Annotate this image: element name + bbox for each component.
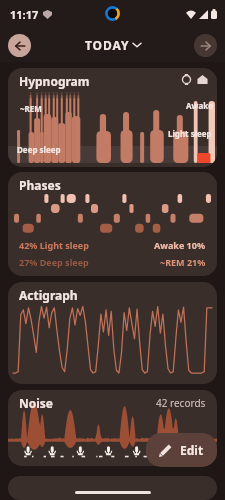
staticText: 11:17 xyxy=(10,7,39,22)
button[interactable]: Edit xyxy=(146,433,217,467)
staticText: ~REM xyxy=(20,103,42,114)
staticText: Deep sleep xyxy=(17,144,61,155)
button[interactable]: Watch xyxy=(182,74,191,85)
staticText: Noise xyxy=(19,395,54,411)
staticText: Edit xyxy=(180,442,204,458)
staticText: Light sleep xyxy=(168,128,212,139)
button[interactable]: Noise xyxy=(8,390,217,466)
staticText: ~REM 21% xyxy=(160,256,206,268)
staticText: Phases xyxy=(19,177,61,193)
staticText: TODAY xyxy=(85,37,130,53)
staticText: Actigraph xyxy=(19,287,78,303)
button[interactable]: Actigraph xyxy=(8,282,217,384)
button[interactable]: Phases xyxy=(8,172,217,276)
button[interactable]: Next day xyxy=(194,34,217,57)
button[interactable]: Home xyxy=(197,74,208,85)
button[interactable] xyxy=(8,476,217,500)
staticText: Awake 10% xyxy=(154,239,206,251)
button[interactable]: Previous day xyxy=(8,34,31,57)
staticText: 42% Light sleep xyxy=(19,239,89,251)
button[interactable]: Hypnogram xyxy=(8,68,217,167)
staticText: 42 records xyxy=(156,396,206,410)
staticText: Awake xyxy=(186,100,213,111)
staticText: 27% Deep sleep xyxy=(19,256,89,268)
staticText: Hypnogram xyxy=(19,73,90,89)
